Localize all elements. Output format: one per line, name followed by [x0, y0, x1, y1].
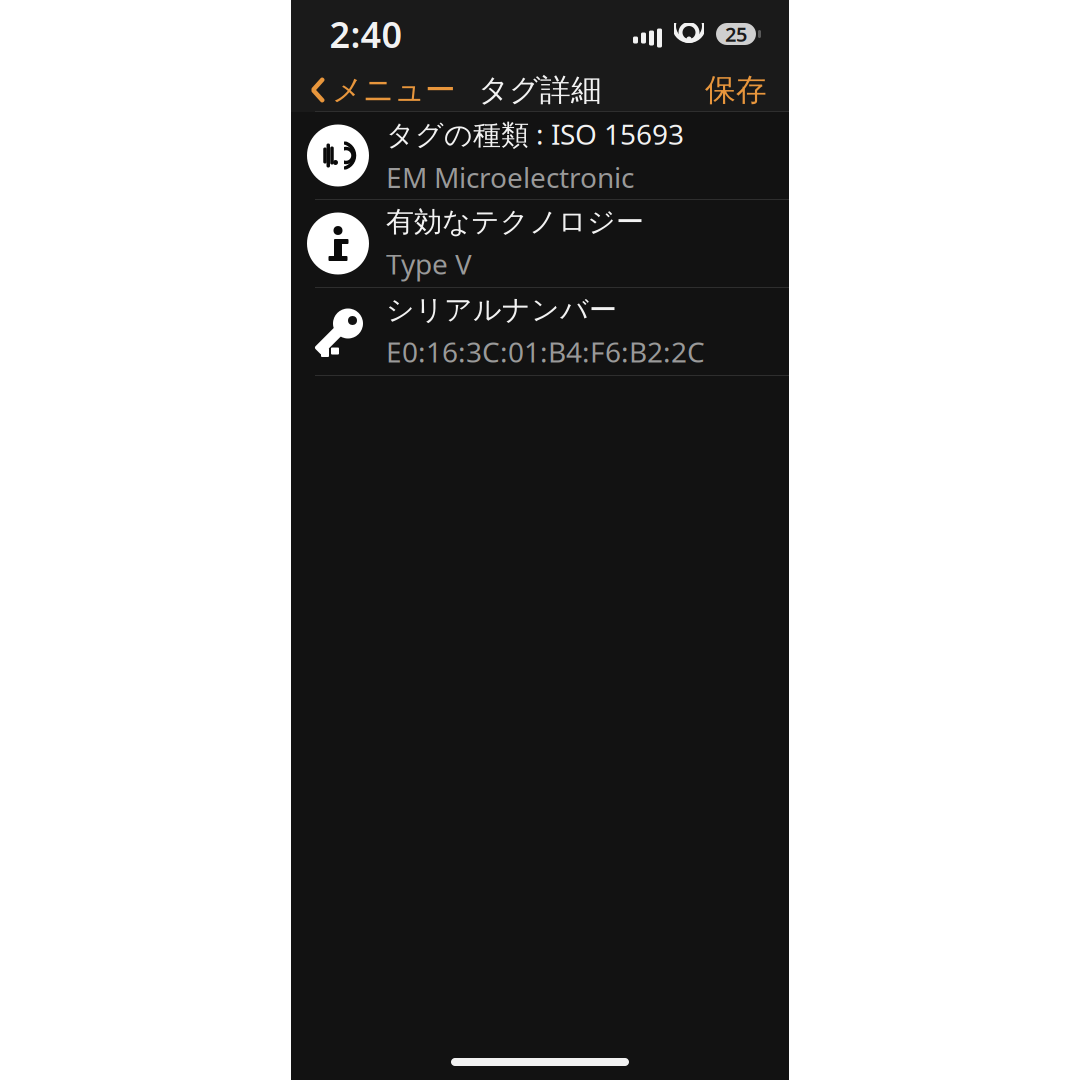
staticText: シリアルナンバー	[386, 293, 617, 327]
staticText: 2:40	[329, 10, 402, 58]
staticText: 25	[725, 21, 747, 47]
button[interactable]: シリアルナンバー	[291, 288, 789, 375]
button[interactable]: タグの種類 : ISO 15693	[291, 112, 789, 199]
staticText: EM Microelectronic	[386, 158, 634, 196]
staticText: 保存	[705, 71, 767, 109]
staticText: 有効なテクノロジー	[386, 205, 644, 239]
button[interactable]: 保存	[687, 63, 785, 117]
staticText: E0:16:3C:01:B4:F6:B2:2C	[386, 333, 705, 370]
staticText: Type V	[386, 245, 472, 282]
staticText: タグ詳細	[478, 71, 602, 109]
staticText: タグの種類 : ISO 15693	[386, 115, 684, 152]
button[interactable]: メニュー	[295, 63, 472, 117]
staticText: メニュー	[332, 71, 456, 109]
button[interactable]: 有効なテクノロジー	[291, 200, 789, 287]
